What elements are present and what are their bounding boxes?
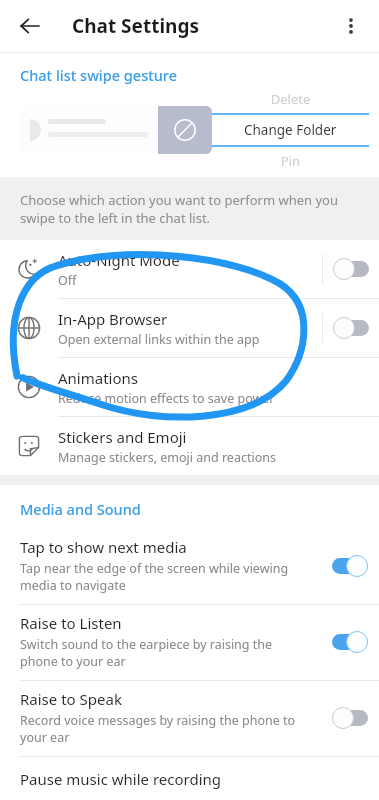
button[interactable]: In-App Browser <box>323 299 379 357</box>
staticText: Delete <box>212 90 369 108</box>
button[interactable]: Raise to Speak <box>0 681 379 756</box>
button[interactable]: In-App Browser <box>0 299 379 357</box>
staticText: Open external links within the app <box>58 331 260 348</box>
staticText: Tap near the edge of the screen while vi… <box>20 560 313 594</box>
staticText: Off <box>58 272 77 289</box>
button[interactable]: Raise to Listen <box>0 605 379 680</box>
staticText: Auto-Night Mode <box>58 250 180 270</box>
staticText: Pin <box>212 152 369 170</box>
staticText: Stickers and Emoji <box>58 427 187 447</box>
staticText: Raise to Listen <box>20 613 122 633</box>
staticText: Raise to Speak <box>20 689 122 709</box>
button[interactable]: Auto-Night Mode <box>323 240 379 298</box>
staticText: Record voice messages by raising the pho… <box>20 712 313 746</box>
button[interactable]: Back <box>8 4 52 48</box>
button[interactable]: Tap to show next media <box>321 544 379 588</box>
button[interactable]: Change Folder <box>212 115 369 145</box>
staticText: Chat list swipe gesture <box>20 65 178 85</box>
staticText: Chat Settings <box>72 13 199 39</box>
button[interactable]: Raise to Listen <box>321 620 379 664</box>
button[interactable]: Stickers and Emoji <box>0 417 379 475</box>
staticText: Reduce motion effects to save power <box>58 390 275 407</box>
button[interactable]: Auto-Night Mode <box>0 240 379 298</box>
staticText: Tap to show next media <box>20 537 187 557</box>
staticText: Choose which action you want to perform … <box>20 191 359 227</box>
button[interactable]: Animations <box>0 358 379 416</box>
staticText: In-App Browser <box>58 309 168 329</box>
staticText: Manage stickers, emoji and reactions <box>58 449 276 466</box>
button[interactable]: Tap to show next media <box>0 529 379 604</box>
staticText: Media and Sound <box>20 499 141 519</box>
staticText: Switch sound to the earpiece by raising … <box>20 636 313 670</box>
button[interactable]: Raise to Speak <box>321 696 379 740</box>
staticText: Animations <box>58 368 138 388</box>
button[interactable]: More options <box>329 4 373 48</box>
staticText: Change Folder <box>244 121 337 139</box>
staticText: Pause music while recording <box>20 769 222 789</box>
